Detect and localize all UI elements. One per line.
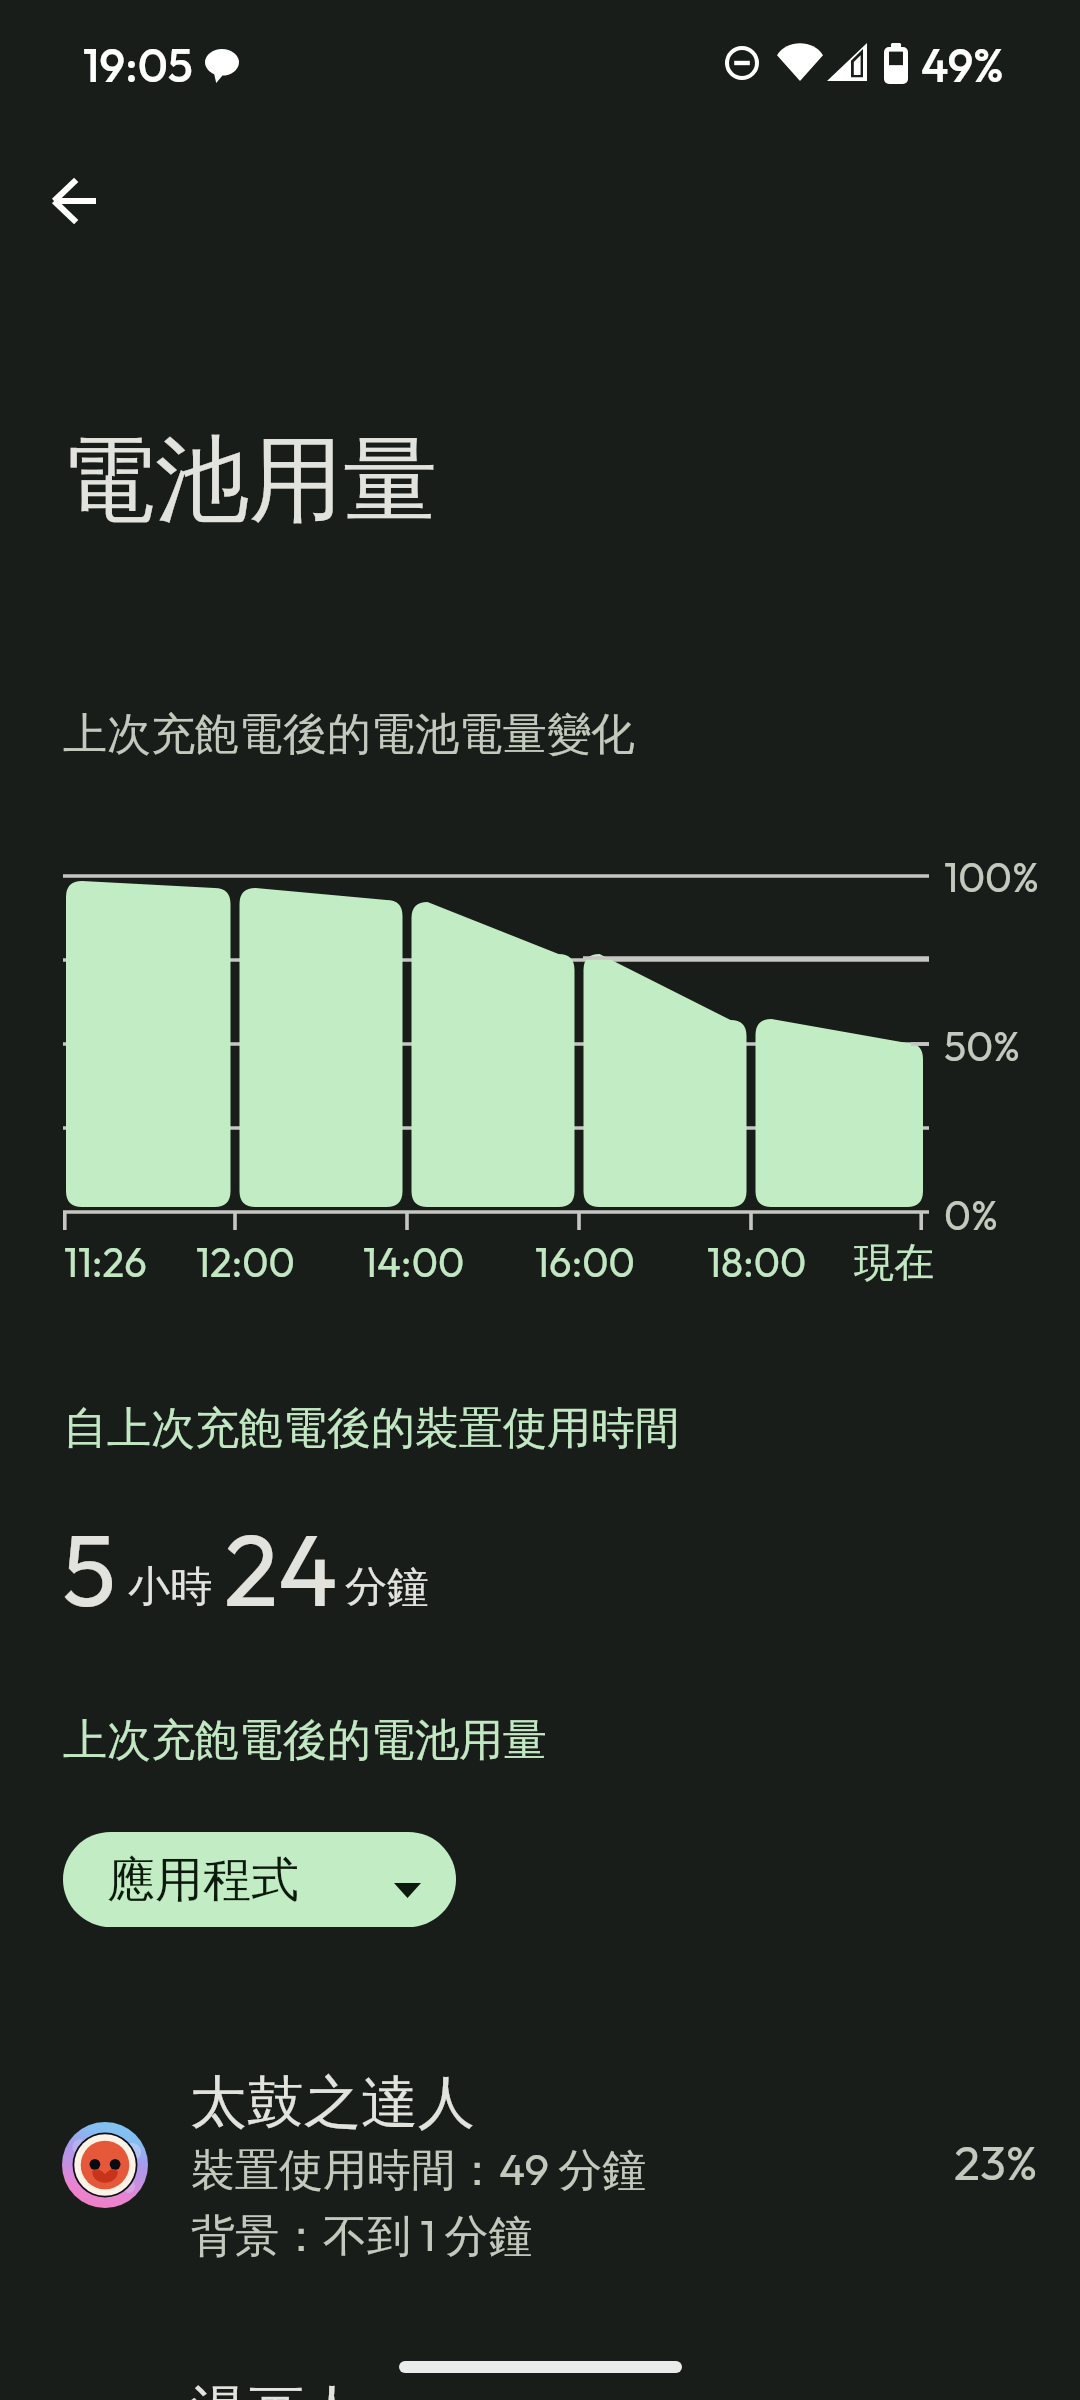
staticText: 49% xyxy=(921,36,1004,94)
staticText: 裝置使用時間：49 分鐘 xyxy=(191,2141,647,2198)
staticText: 應用程式 xyxy=(107,1850,299,1910)
staticText: 16:00 xyxy=(535,1237,635,1287)
button[interactable]: 太鼓之達人 xyxy=(0,2050,1080,2285)
button[interactable]: Back xyxy=(25,153,121,249)
staticText: 分鐘 xyxy=(345,1561,429,1614)
staticText: 12:00 xyxy=(196,1237,295,1287)
staticText: 100% xyxy=(944,851,1040,903)
staticText: 14:00 xyxy=(363,1237,465,1287)
staticText: 上次充飽電後的電池電量變化 xyxy=(63,707,635,762)
staticText: 11:26 xyxy=(64,1237,147,1287)
button[interactable]: 應用程式 xyxy=(63,1832,456,1927)
staticText: 50% xyxy=(944,1020,1021,1072)
staticText: 23% xyxy=(954,2132,1038,2192)
staticText: 上次充飽電後的電池用量 xyxy=(63,1713,547,1768)
staticText: 電池用量 xyxy=(61,421,437,539)
staticText: 19:05 xyxy=(83,36,193,94)
staticText: 背景：不到 1 分鐘 xyxy=(191,2207,533,2264)
staticText: 漫画人 xyxy=(190,2376,361,2400)
staticText: 小時 xyxy=(128,1561,212,1614)
staticText: 自上次充飽電後的裝置使用時間 xyxy=(63,1401,679,1456)
staticText: 18:00 xyxy=(707,1237,807,1287)
staticText: 現在 xyxy=(854,1237,934,1287)
staticText: 24 xyxy=(224,1506,338,1632)
staticText: 5 xyxy=(62,1506,117,1632)
staticText: 太鼓之達人 xyxy=(190,2067,475,2139)
staticText: 0% xyxy=(944,1189,998,1241)
